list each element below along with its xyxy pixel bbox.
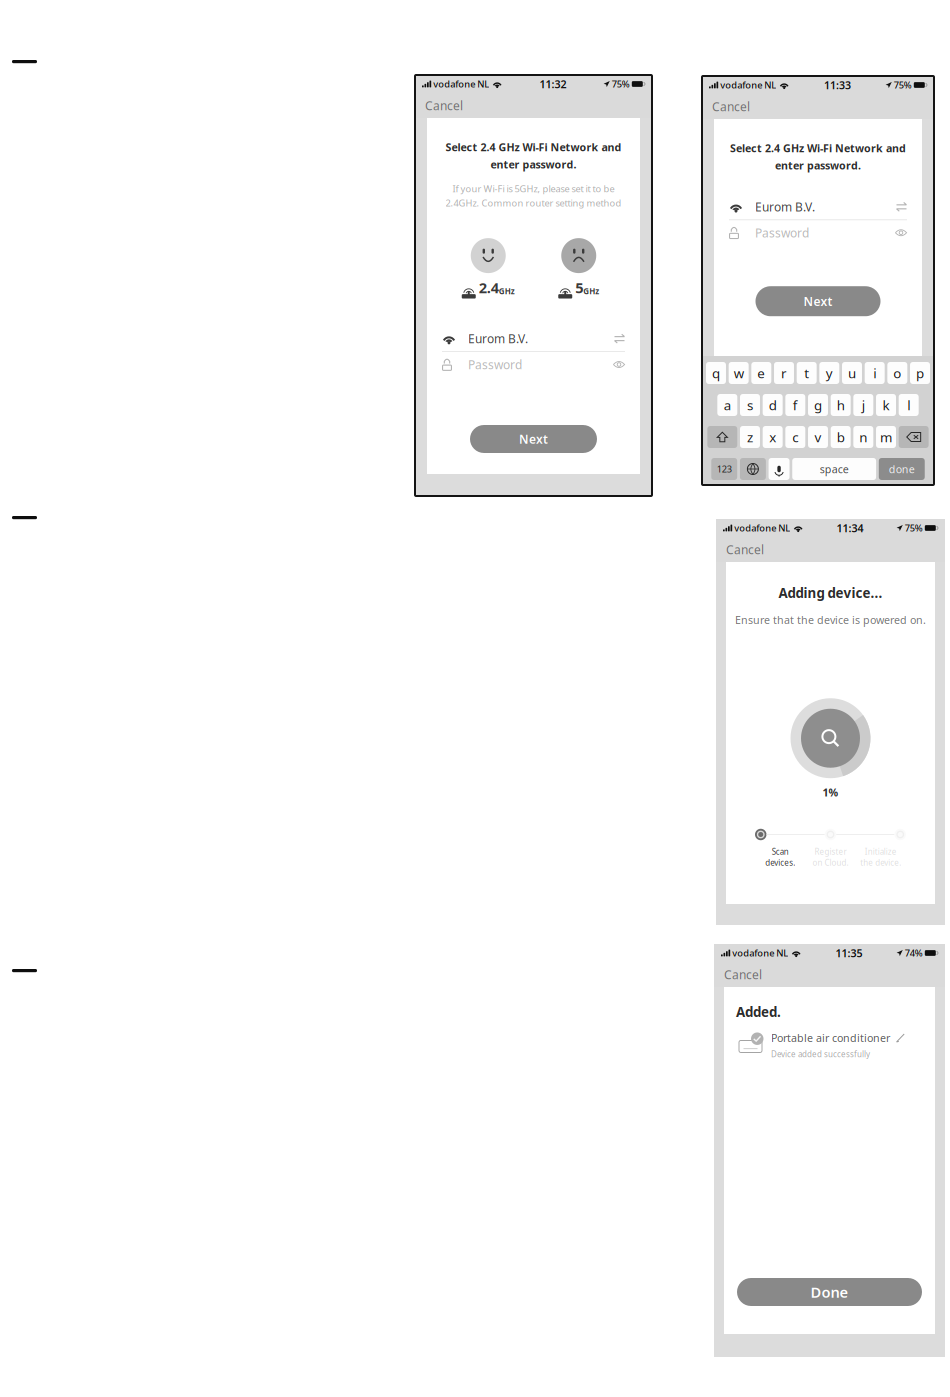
staticText: Register — [814, 846, 846, 857]
staticText: c — [792, 428, 798, 446]
staticText: Done — [810, 1282, 848, 1302]
staticText: on Cloud. — [812, 857, 848, 868]
button[interactable]: i — [865, 362, 885, 384]
button[interactable]: f — [785, 394, 805, 416]
button[interactable]: Key — [711, 458, 737, 480]
staticText: Password — [755, 225, 809, 241]
button[interactable]: d — [763, 394, 783, 416]
button[interactable]: a — [717, 394, 737, 416]
button[interactable]: y — [819, 362, 839, 384]
staticText: 11:35 — [835, 946, 862, 960]
staticText: Next — [803, 293, 832, 309]
staticText: space — [820, 462, 849, 476]
button[interactable]: Rename device — [896, 1033, 905, 1043]
staticText: Scan — [772, 846, 789, 857]
staticText: vodafone NL — [431, 78, 489, 90]
staticText: enter password. — [775, 158, 861, 172]
button[interactable]: p — [910, 362, 930, 384]
staticText: e — [757, 364, 765, 382]
staticText: the device. — [860, 857, 901, 868]
button[interactable]: h — [831, 394, 851, 416]
staticText: j — [862, 396, 865, 414]
staticText: u — [848, 364, 856, 382]
button[interactable]: done — [879, 458, 925, 480]
button[interactable]: o — [887, 362, 907, 384]
staticText: i — [873, 364, 876, 382]
staticText: Next — [519, 431, 548, 447]
button[interactable]: Next — [470, 425, 597, 453]
button[interactable]: Done — [737, 1278, 922, 1306]
button[interactable]: s — [740, 394, 760, 416]
button[interactable]: q — [706, 362, 726, 384]
staticText: b — [837, 428, 845, 446]
button[interactable]: z — [740, 426, 760, 448]
button[interactable]: e — [751, 362, 771, 384]
staticText: done — [889, 462, 915, 476]
button[interactable]: x — [763, 426, 783, 448]
staticText: y — [826, 364, 833, 382]
button[interactable]: g — [808, 394, 828, 416]
staticText: Cancel — [425, 97, 463, 113]
button[interactable]: r — [774, 362, 794, 384]
staticText: d — [769, 396, 777, 414]
staticText: vodafone NL — [718, 79, 776, 91]
button[interactable]: u — [842, 362, 862, 384]
staticText: x — [769, 428, 776, 446]
staticText: 123 — [717, 463, 732, 475]
staticText: enter password. — [490, 157, 576, 171]
staticText: q — [712, 364, 720, 382]
staticText: v — [814, 428, 821, 446]
staticText: GHz — [499, 286, 515, 296]
staticText: t — [804, 364, 809, 382]
button[interactable]: c — [785, 426, 805, 448]
staticText: o — [893, 364, 901, 382]
staticText: s — [747, 396, 753, 414]
staticText: Cancel — [712, 98, 750, 114]
staticText: Cancel — [726, 541, 764, 557]
button[interactable]: n — [853, 426, 873, 448]
staticText: n — [859, 428, 867, 446]
staticText: 2.4GHz. Common router setting method — [445, 197, 621, 209]
staticText: w — [734, 364, 744, 382]
staticText: Eurom B.V. — [755, 199, 815, 215]
staticText: Select 2.4 GHz Wi-Fi Network and — [445, 140, 621, 154]
staticText: h — [837, 396, 845, 414]
button[interactable]: l — [899, 394, 919, 416]
staticText: 11:32 — [539, 77, 566, 91]
staticText: 11:34 — [836, 521, 863, 535]
staticText: k — [882, 396, 889, 414]
staticText: If your Wi-Fi is 5GHz, please set it to … — [452, 182, 614, 195]
staticText: Ensure that the device is powered on. — [735, 613, 926, 627]
button[interactable]: Cancel — [717, 964, 769, 984]
button[interactable]: k — [876, 394, 896, 416]
button[interactable]: b — [831, 426, 851, 448]
staticText: Initialize — [865, 846, 897, 857]
staticText: vodafone NL — [732, 522, 790, 534]
staticText: Select 2.4 GHz Wi-Fi Network and — [730, 141, 906, 155]
button[interactable]: Key — [707, 426, 737, 448]
staticText: Eurom B.V. — [468, 331, 528, 347]
staticText: 5 — [575, 278, 583, 297]
button[interactable]: Key — [899, 426, 929, 448]
button[interactable]: Key — [769, 458, 790, 480]
button[interactable]: v — [808, 426, 828, 448]
button[interactable]: t — [797, 362, 817, 384]
staticText: Device added successfully — [771, 1049, 870, 1059]
button[interactable]: Cancel — [418, 95, 470, 115]
button[interactable]: Cancel — [705, 96, 757, 116]
staticText: p — [916, 364, 924, 382]
staticText: 75% — [610, 78, 632, 90]
button[interactable]: Cancel — [719, 539, 771, 559]
button[interactable]: Key — [792, 458, 876, 480]
staticText: z — [747, 428, 753, 446]
button[interactable]: w — [729, 362, 749, 384]
staticText: GHz — [583, 286, 599, 296]
staticText: 74% — [903, 947, 925, 959]
button[interactable]: Key — [740, 458, 766, 480]
staticText: devices. — [765, 857, 795, 868]
button[interactable]: m — [876, 426, 896, 448]
staticText: Adding device... — [778, 584, 882, 602]
button[interactable]: Next — [755, 286, 880, 316]
button[interactable]: j — [853, 394, 873, 416]
staticText: 75% — [892, 79, 914, 91]
